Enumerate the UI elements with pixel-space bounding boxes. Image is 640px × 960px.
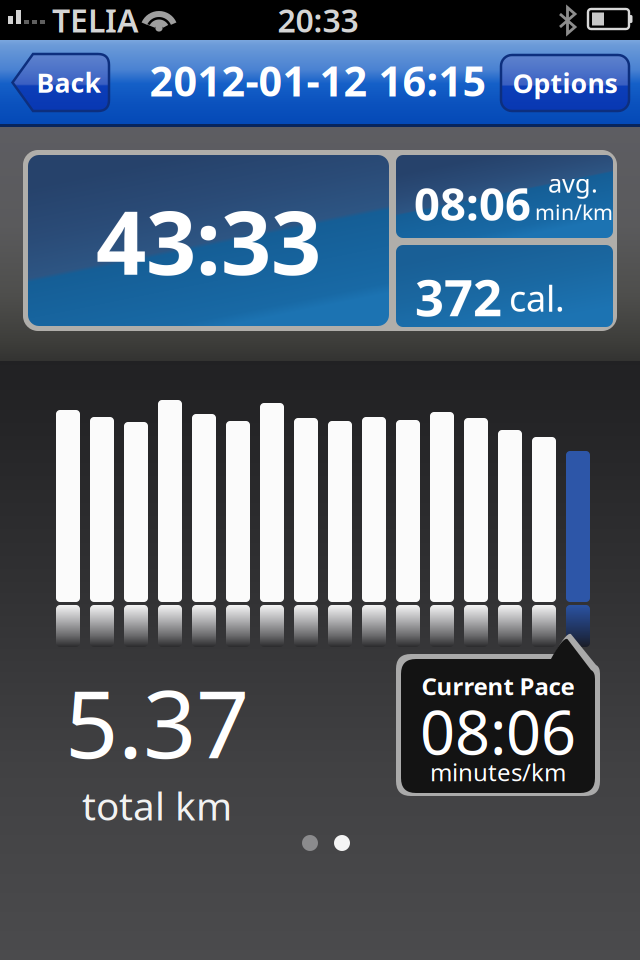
staticText: Back xyxy=(36,65,101,100)
staticText: minutes/km xyxy=(430,756,566,788)
staticText: cal. xyxy=(509,274,565,322)
button[interactable]: Options xyxy=(501,55,629,111)
staticText: total km xyxy=(82,780,232,831)
staticText: 08:06 xyxy=(420,690,576,772)
staticText: Current Pace xyxy=(421,670,574,702)
staticText: avg. xyxy=(548,166,598,200)
staticText: 2012-01-12 16:15 xyxy=(149,53,486,108)
staticText: 372 xyxy=(415,263,502,330)
staticText: Options xyxy=(512,65,617,101)
staticText: 20:33 xyxy=(277,0,358,41)
staticText: 43:33 xyxy=(96,182,321,299)
staticText: TELIA xyxy=(52,0,139,41)
staticText: 5.37 xyxy=(65,660,249,784)
staticText: 08:06 xyxy=(414,173,531,233)
staticText: min/km xyxy=(535,198,613,226)
button[interactable]: Back xyxy=(11,54,118,111)
